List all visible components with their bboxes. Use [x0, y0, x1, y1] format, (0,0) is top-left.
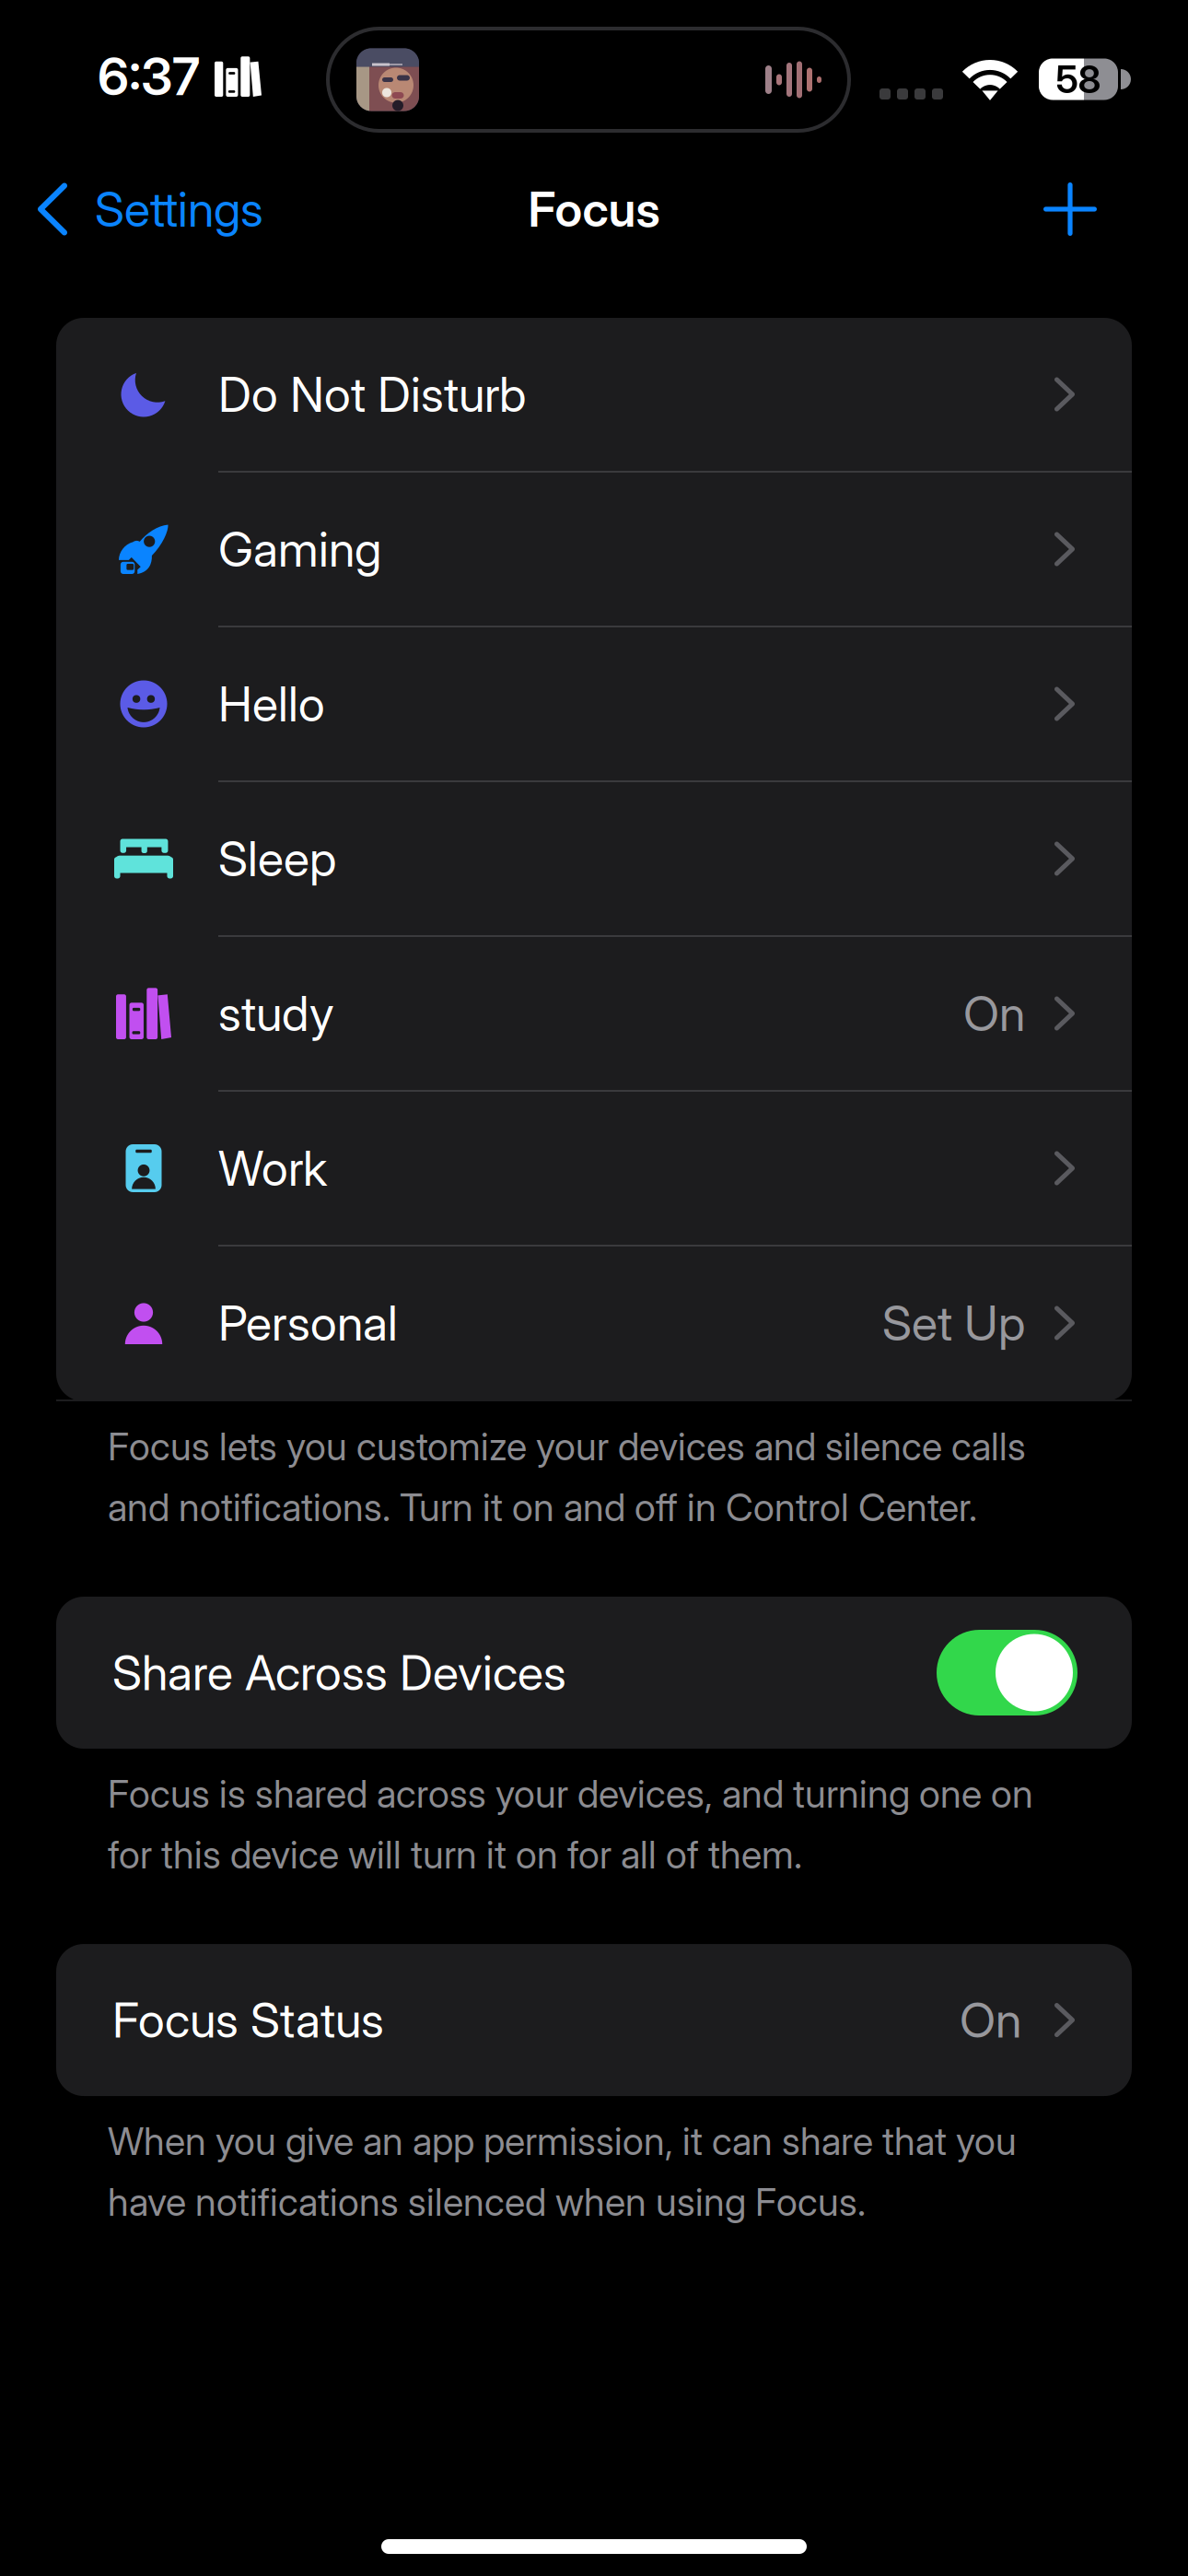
staticText: Set Up [882, 1294, 1025, 1352]
staticText: Gaming [218, 520, 381, 578]
staticText: Share Across Devices [112, 1644, 566, 1702]
button[interactable]: Focus Status [56, 1944, 1132, 2096]
staticText: On [960, 1991, 1021, 2049]
button[interactable]: Personal [56, 1247, 1132, 1401]
staticText: Work [218, 1139, 327, 1197]
button[interactable]: Share Across Devices [56, 1597, 1132, 1749]
button[interactable]: Settings [0, 167, 285, 251]
staticText: Settings [95, 180, 263, 238]
staticText: When you give an app permission, it can … [108, 2118, 1017, 2164]
staticText: study [218, 984, 334, 1042]
button[interactable]: Gaming [56, 473, 1132, 627]
button[interactable]: Sleep [56, 782, 1132, 937]
staticText: Personal [218, 1294, 398, 1352]
staticText: 6:37 [98, 45, 200, 108]
staticText: Hello [218, 675, 325, 733]
staticText: 58 [1056, 56, 1101, 102]
button[interactable]: Hello [56, 627, 1132, 782]
staticText: have notifications silenced when using F… [108, 2179, 866, 2225]
button[interactable]: Add Focus [1007, 170, 1188, 249]
staticText: and notifications. Turn it on and off in… [108, 1484, 977, 1530]
button[interactable]: Work [56, 1092, 1132, 1247]
staticText: for this device will turn it on for all … [108, 1832, 802, 1878]
staticText: Sleep [218, 830, 336, 888]
staticText: Do Not Disturb [218, 365, 526, 423]
button[interactable]: Do Not Disturb [56, 318, 1132, 473]
staticText: Focus lets you customize your devices an… [108, 1423, 1026, 1469]
button[interactable]: study [56, 937, 1132, 1092]
staticText: On [963, 984, 1025, 1042]
staticText: Focus Status [112, 1991, 384, 2049]
staticText: Focus is shared across your devices, and… [108, 1771, 1033, 1817]
staticText: Focus [528, 180, 660, 238]
